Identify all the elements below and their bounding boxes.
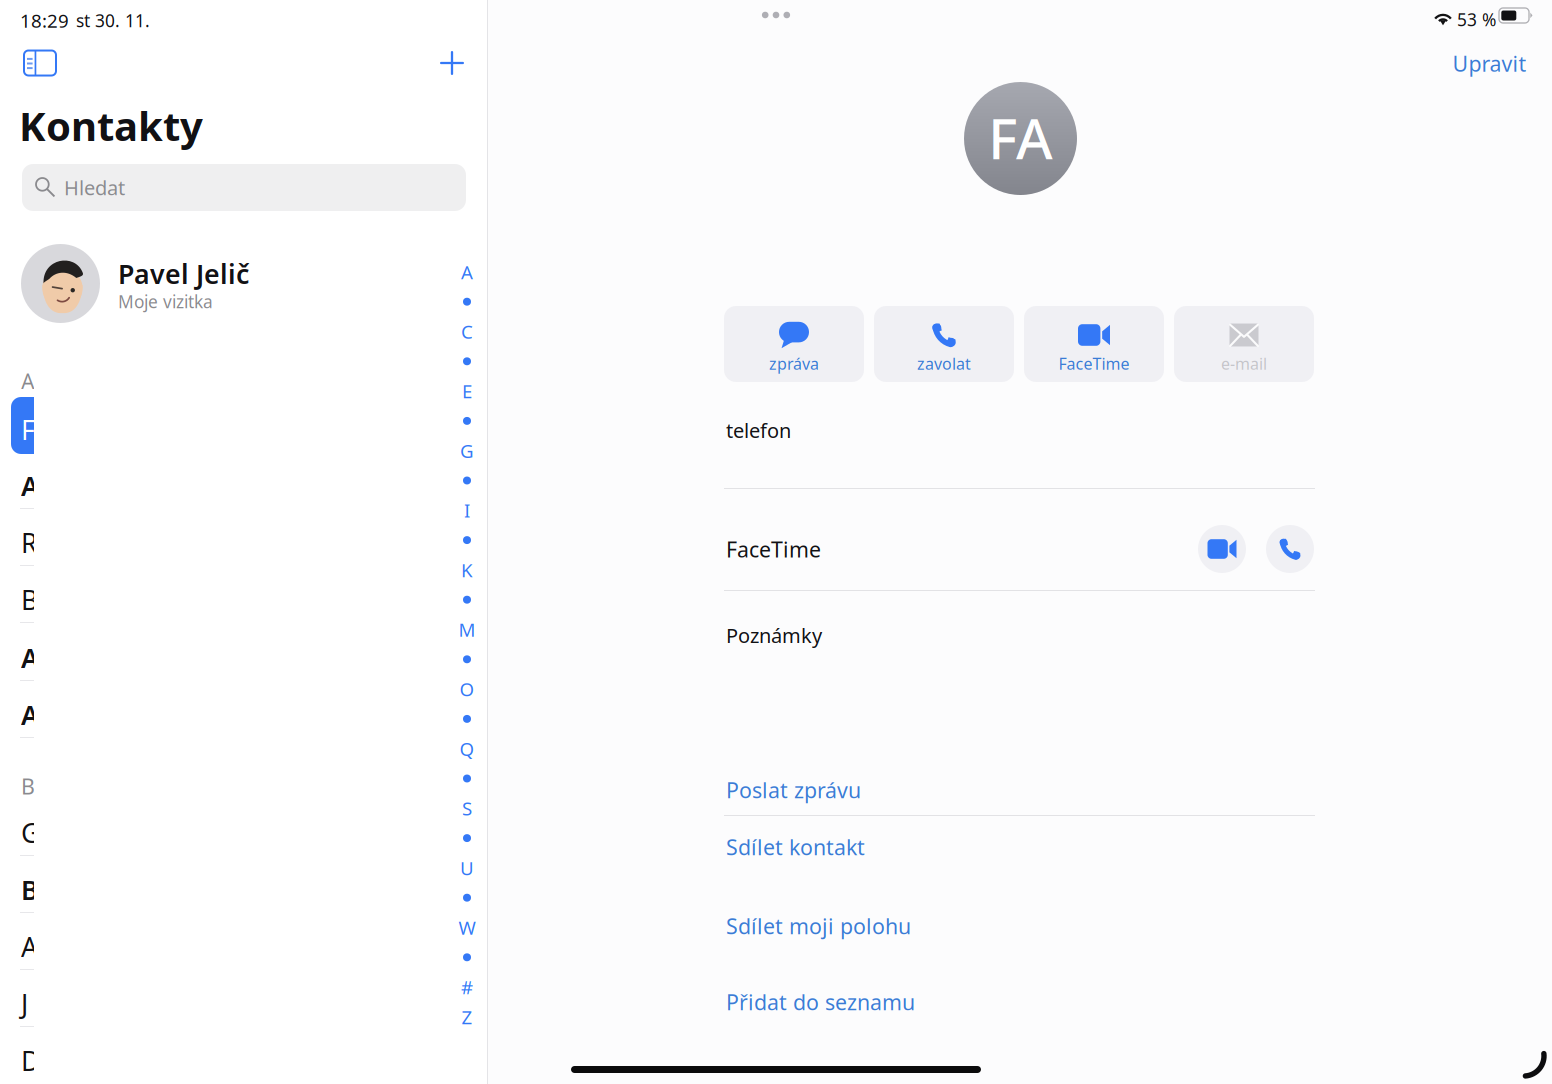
staticText: Moje vizitka xyxy=(118,290,213,313)
staticText: Přidat do seznamu xyxy=(726,988,915,1016)
staticText: W xyxy=(458,915,475,940)
staticText: 18:29 xyxy=(20,8,69,33)
staticText: zpráva xyxy=(769,353,819,374)
button[interactable]: FaceTime audio xyxy=(1266,525,1314,573)
staticText: A xyxy=(21,697,39,732)
staticText: D xyxy=(21,1043,40,1078)
staticText: e-mail xyxy=(1221,353,1267,374)
staticText: C xyxy=(461,319,473,344)
staticText: R xyxy=(21,525,38,560)
staticText: S xyxy=(462,796,472,821)
staticText: G xyxy=(460,438,474,463)
button[interactable]: New contact xyxy=(424,40,480,86)
staticText: Kontakty xyxy=(19,99,203,152)
staticText: A xyxy=(21,929,38,964)
staticText: A xyxy=(21,640,39,675)
staticText: A xyxy=(21,367,35,395)
staticText: F xyxy=(21,412,35,447)
staticText: E xyxy=(462,379,472,403)
staticText: G xyxy=(21,815,40,850)
button[interactable]: Poslat zprávu xyxy=(724,768,1315,812)
staticText: U xyxy=(460,855,474,880)
button[interactable]: Sdílet moji polohu xyxy=(724,904,1315,948)
staticText: I xyxy=(464,498,470,523)
button[interactable]: Hide sidebar xyxy=(12,40,68,86)
staticText: B xyxy=(21,872,39,907)
button[interactable]: B xyxy=(0,856,34,913)
button[interactable]: R xyxy=(0,509,34,566)
button[interactable]: FaceTime video xyxy=(1198,525,1246,573)
staticText: K xyxy=(461,557,473,582)
button[interactable]: e-mail xyxy=(1174,306,1314,382)
staticText: FaceTime xyxy=(726,535,821,563)
button[interactable]: zpráva xyxy=(724,306,864,382)
staticText: zavolat xyxy=(917,353,971,374)
staticText: Hledat xyxy=(64,174,125,201)
staticText: B xyxy=(21,582,38,617)
button[interactable]: Upravit xyxy=(1434,35,1545,92)
staticText: B xyxy=(21,772,35,800)
staticText: Upravit xyxy=(1452,49,1526,78)
button[interactable]: Hledat xyxy=(22,164,466,211)
staticText: Sdílet kontakt xyxy=(726,833,865,861)
button[interactable]: A xyxy=(0,913,34,970)
staticText: Pavel Jelič xyxy=(118,256,249,291)
staticText: telefon xyxy=(726,417,791,444)
staticText: Q xyxy=(459,736,474,761)
staticText: O xyxy=(459,677,474,701)
button[interactable]: D xyxy=(0,1027,34,1084)
button[interactable]: G xyxy=(0,799,34,856)
button[interactable]: B xyxy=(0,566,34,623)
button[interactable]: A xyxy=(0,681,34,738)
staticText: A xyxy=(21,468,39,503)
staticText: A xyxy=(461,259,473,284)
staticText: Poslat zprávu xyxy=(726,776,861,804)
staticText: Sdílet moji polohu xyxy=(726,912,911,940)
button[interactable]: zavolat xyxy=(874,306,1014,382)
staticText: Poznámky xyxy=(726,622,822,649)
button[interactable]: Section index xyxy=(448,257,486,1032)
staticText: FaceTime xyxy=(1058,353,1129,374)
staticText: st 30. 11. xyxy=(76,9,150,32)
button[interactable]: F xyxy=(11,397,34,454)
button[interactable]: Multitasking controls xyxy=(742,0,810,30)
button[interactable]: Přidat do seznamu xyxy=(724,980,1315,1024)
button[interactable]: FaceTime xyxy=(1024,306,1164,382)
button[interactable]: Sdílet kontakt xyxy=(724,825,1315,869)
button[interactable]: A xyxy=(0,624,34,681)
button[interactable]: J xyxy=(0,970,34,1027)
staticText: # xyxy=(461,975,473,999)
staticText: M xyxy=(458,617,475,642)
staticText: 53 % xyxy=(1457,8,1496,31)
staticText: J xyxy=(21,986,28,1021)
staticText: Z xyxy=(461,1004,472,1029)
staticText: FA xyxy=(988,100,1053,175)
button[interactable]: A xyxy=(0,452,34,509)
button[interactable]: Pavel Jelič xyxy=(21,242,441,326)
